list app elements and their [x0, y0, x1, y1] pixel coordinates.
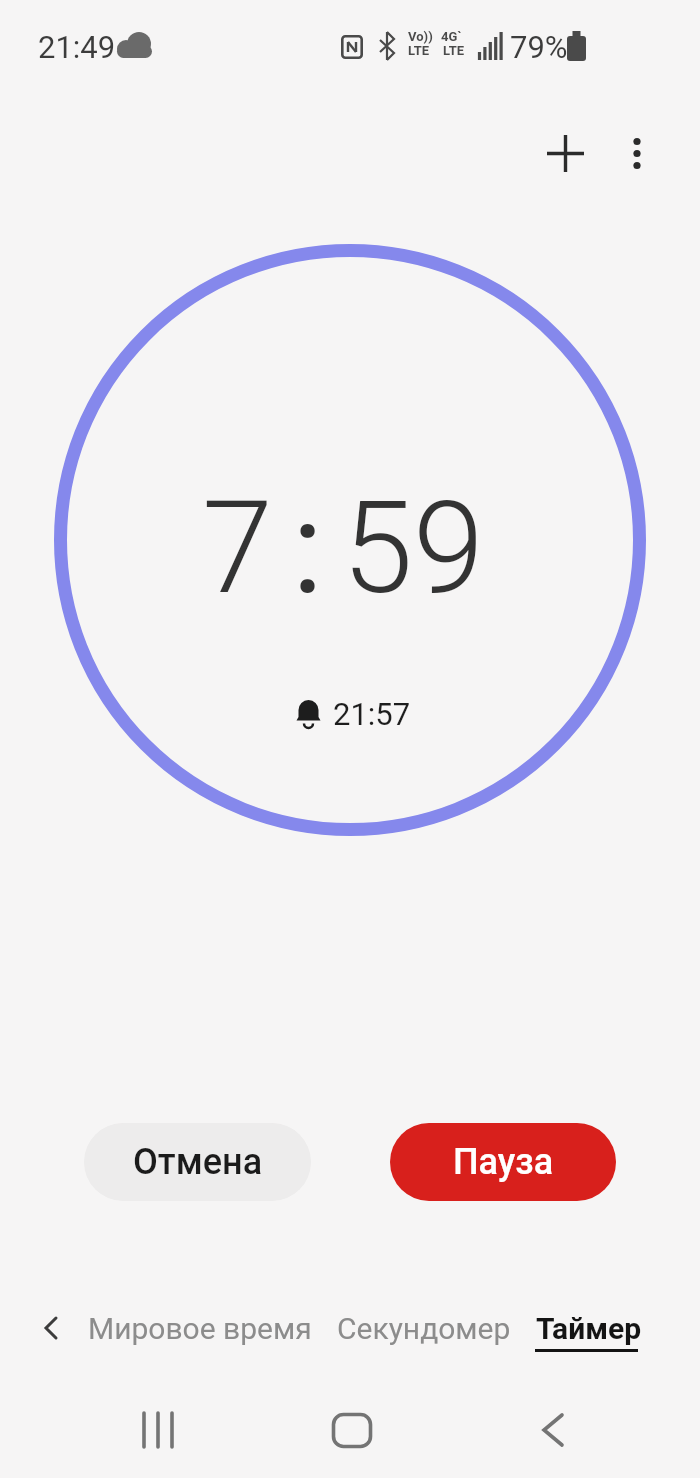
- staticText: Отмена: [133, 1141, 263, 1183]
- staticText: Секундомер: [337, 1311, 511, 1346]
- staticText: :: [292, 473, 323, 623]
- staticText: 21:49: [38, 29, 116, 65]
- button[interactable]: [615, 126, 659, 181]
- staticText: 21:57: [333, 696, 411, 732]
- staticText: Пауза: [453, 1141, 554, 1183]
- staticText: Vo)): [408, 29, 433, 44]
- staticText: Мировое время: [88, 1311, 312, 1346]
- button[interactable]: Таймер: [528, 1300, 634, 1356]
- staticText: Таймер: [536, 1311, 642, 1346]
- staticText: 4G`: [441, 29, 462, 44]
- staticText: 59: [342, 473, 484, 623]
- button[interactable]: Мировое время: [80, 1300, 304, 1356]
- button[interactable]: [538, 126, 593, 181]
- staticText: 79%: [510, 29, 568, 65]
- button[interactable]: Секундомер: [330, 1300, 504, 1356]
- button[interactable]: Отмена: [84, 1123, 311, 1201]
- button[interactable]: [30, 1305, 70, 1351]
- button[interactable]: [130, 1402, 186, 1458]
- button[interactable]: Пауза: [390, 1123, 616, 1201]
- staticText: 7: [202, 473, 273, 623]
- staticText: LTE: [443, 43, 465, 58]
- button[interactable]: [525, 1402, 581, 1458]
- button[interactable]: [324, 1402, 380, 1458]
- staticText: LTE: [408, 43, 430, 58]
